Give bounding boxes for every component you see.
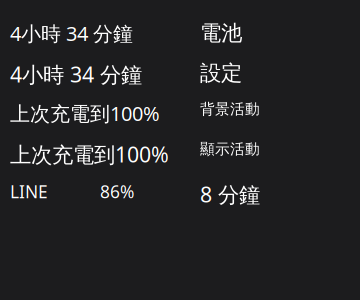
staticText: 4小時 34 分鐘 — [10, 60, 142, 88]
staticText: LINE — [10, 180, 48, 203]
staticText: 8 分鐘 — [200, 180, 260, 208]
staticText: 顯示活動 — [200, 140, 260, 158]
staticText: 背景活動 — [200, 100, 260, 118]
staticText: 上次充電到100% — [10, 140, 169, 168]
staticText: 上次充電到100% — [10, 100, 160, 127]
staticText: 4小時 34 分鐘 — [10, 20, 133, 47]
staticText: 電池 — [200, 20, 242, 46]
staticText: 設定 — [200, 60, 242, 86]
staticText: 86% — [100, 180, 134, 203]
